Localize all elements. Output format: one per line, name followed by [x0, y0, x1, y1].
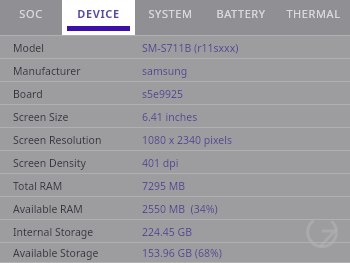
staticText: Total RAM: [13, 179, 63, 193]
button[interactable]: Available Storage: [0, 243, 350, 263]
staticText: 6.41 inches: [142, 110, 198, 124]
staticText: Internal Storage: [13, 225, 94, 239]
button[interactable]: DEVICE: [62, 0, 135, 35]
staticText: 224.45 GB: [142, 225, 193, 239]
button[interactable]: Internal Storage: [0, 220, 350, 243]
button[interactable]: SYSTEM: [135, 0, 205, 35]
staticText: Model: [13, 41, 44, 55]
button[interactable]: Screen Density: [0, 151, 350, 174]
staticText: 7295 MB: [142, 179, 186, 193]
staticText: SM-S711B (r11sxxx): [142, 41, 239, 55]
staticText: BATTERY: [216, 6, 266, 21]
staticText: 401 dpi: [142, 156, 179, 170]
button[interactable]: BATTERY: [205, 0, 277, 35]
staticText: 2550 MB (34%): [142, 202, 218, 216]
staticText: samsung: [142, 64, 188, 78]
staticText: 153.96 GB (68%): [142, 246, 222, 260]
staticText: Manufacturer: [13, 64, 81, 78]
staticText: DEVICE: [77, 6, 120, 21]
staticText: Available Storage: [13, 246, 99, 260]
button[interactable]: Available RAM: [0, 197, 350, 220]
staticText: Screen Resolution: [13, 133, 102, 147]
staticText: THERMAL: [286, 6, 341, 21]
staticText: Board: [13, 87, 43, 101]
button[interactable]: Screen Resolution: [0, 128, 350, 151]
button[interactable]: Total RAM: [0, 174, 350, 197]
staticText: Screen Density: [13, 156, 86, 170]
button[interactable]: Board: [0, 82, 350, 105]
button[interactable]: SOC: [0, 0, 62, 35]
staticText: Screen Size: [13, 110, 69, 124]
staticText: SOC: [19, 6, 43, 21]
staticText: Available RAM: [13, 202, 83, 216]
staticText: SYSTEM: [148, 6, 193, 21]
button[interactable]: Model: [0, 36, 350, 59]
staticText: s5e9925: [142, 87, 183, 101]
button[interactable]: Screen Size: [0, 105, 350, 128]
button[interactable]: Manufacturer: [0, 59, 350, 82]
staticText: 1080 x 2340 pixels: [142, 133, 232, 147]
button[interactable]: THERMAL: [277, 0, 350, 35]
